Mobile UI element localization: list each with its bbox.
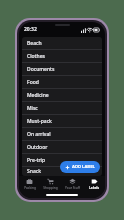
button[interactable]: Your Stuff <box>61 176 83 192</box>
button[interactable]: Medicine <box>22 89 102 102</box>
staticText: Your Stuff <box>65 186 80 190</box>
staticText: ADD LABEL <box>72 164 95 170</box>
staticText: Clothes <box>27 53 45 60</box>
staticText: Labels <box>89 186 99 190</box>
staticText: Beach <box>27 40 42 47</box>
button[interactable]: Pre-trip <box>22 154 102 167</box>
button[interactable]: Snack <box>22 167 102 176</box>
staticText: 20:32 <box>24 26 37 33</box>
staticText: Shopping <box>43 186 58 190</box>
staticText: Must-pack <box>27 118 52 125</box>
button[interactable]: Beach <box>22 37 102 50</box>
staticText: Outdoor <box>27 144 48 151</box>
staticText: Documents <box>27 66 55 73</box>
staticText: Packing <box>24 186 36 190</box>
button[interactable]: Food <box>22 76 102 89</box>
button[interactable]: Misc <box>22 102 102 115</box>
staticText: Misc <box>27 105 38 112</box>
other: Signal, Wi-Fi and battery status <box>81 27 100 33</box>
button[interactable]: Shopping <box>40 176 61 192</box>
button[interactable]: ADD LABEL <box>60 161 100 173</box>
button[interactable]: Packing <box>19 176 40 192</box>
button[interactable]: Labels <box>83 176 105 192</box>
staticText: Medicine <box>27 92 49 99</box>
button[interactable]: Must-pack <box>22 115 102 128</box>
staticText: Snack <box>27 168 41 175</box>
button[interactable]: Clothes <box>22 50 102 63</box>
staticText: On arrival <box>27 131 51 138</box>
staticText: Pre-trip <box>27 157 46 164</box>
button[interactable]: Outdoor <box>22 141 102 154</box>
button[interactable]: Documents <box>22 63 102 76</box>
staticText: Food <box>27 79 39 86</box>
button[interactable]: On arrival <box>22 128 102 141</box>
